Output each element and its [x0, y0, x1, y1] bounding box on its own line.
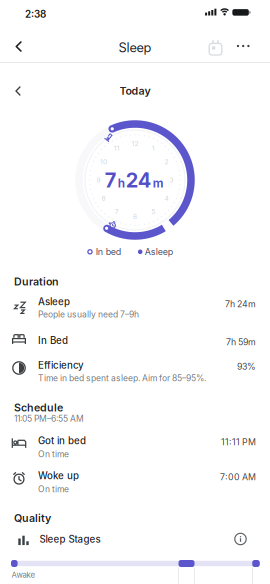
staticText: Schedule [14, 401, 63, 414]
staticText: In Bed [38, 335, 68, 346]
button[interactable]: Change date [197, 28, 233, 64]
staticText: 7 [105, 168, 117, 192]
staticText: 4 [165, 194, 169, 202]
staticText: m [153, 176, 164, 190]
staticText: 7 [115, 208, 119, 216]
staticText: 8 [101, 194, 105, 202]
staticText: Asleep [145, 246, 173, 257]
staticText: 11 [114, 144, 120, 152]
staticText: 11:05 PM–6:55 AM [14, 414, 84, 424]
staticText: 10 [100, 158, 107, 166]
staticText: 7h 59m [226, 337, 256, 347]
staticText: People usually need 7–9h [38, 309, 139, 319]
staticText: Time in bed spent asleep. Aim for 85–95%… [38, 373, 206, 383]
staticText: Sleep Stages [39, 533, 100, 545]
staticText: 5 [151, 208, 155, 216]
staticText: 12 [131, 140, 138, 147]
staticText: On time [38, 449, 69, 459]
button[interactable]: Previous day [0, 76, 36, 106]
staticText: Awake [11, 570, 35, 579]
button[interactable]: Back [0, 29, 36, 64]
staticText: Got in bed [38, 435, 86, 446]
staticText: Quality [14, 512, 51, 524]
staticText: 11:11 PM [221, 437, 256, 447]
staticText: h [118, 176, 125, 190]
staticText: 3 [169, 176, 173, 184]
staticText: 93% [237, 361, 256, 372]
staticText: 9 [96, 176, 100, 184]
staticText: 6 [133, 213, 137, 220]
staticText: 24 [126, 168, 152, 192]
staticText: 2:38 [25, 8, 46, 20]
staticText: 1 [152, 144, 155, 152]
staticText: On time [38, 484, 69, 494]
staticText: Efficiency [38, 360, 84, 371]
staticText: 2 [165, 158, 169, 166]
staticText: Sleep [118, 40, 151, 55]
staticText: Asleep [38, 296, 70, 307]
button[interactable]: Sleep Stages [11, 528, 255, 550]
staticText: Woke up [38, 470, 79, 481]
staticText: 7:00 AM [220, 472, 256, 482]
staticText: In bed [96, 246, 121, 257]
staticText: 7h 24m [225, 299, 256, 309]
button[interactable]: More options [226, 28, 260, 64]
staticText: Duration [14, 275, 59, 288]
staticText: Today [119, 84, 150, 97]
